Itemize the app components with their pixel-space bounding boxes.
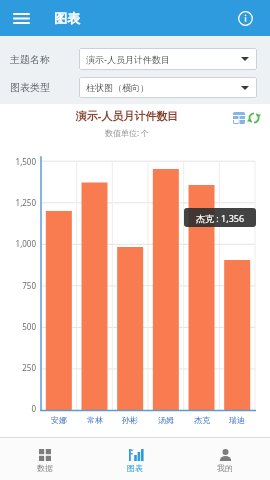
staticText: 图表 bbox=[127, 463, 143, 473]
staticText: 500 bbox=[0, 321, 36, 332]
button[interactable] bbox=[233, 112, 245, 124]
button[interactable]: 图表 bbox=[90, 438, 180, 480]
staticText: 孙彬 bbox=[112, 415, 148, 425]
button[interactable]: 数据 bbox=[0, 438, 90, 480]
staticText: 数据 bbox=[37, 463, 53, 473]
staticText: 250 bbox=[0, 362, 36, 373]
button[interactable]: 我的 bbox=[180, 438, 270, 480]
staticText: 我的 bbox=[217, 463, 233, 473]
button[interactable] bbox=[10, 7, 32, 29]
staticText: 汤姆 bbox=[148, 415, 184, 425]
staticText: 常林 bbox=[77, 415, 113, 425]
staticText: 图表类型 bbox=[10, 81, 50, 94]
staticText: 1,500 bbox=[0, 156, 36, 167]
staticText: 杰克 bbox=[184, 415, 220, 425]
staticText: 演示-人员月计件数目 bbox=[0, 108, 254, 123]
staticText: 演示-人员月计件数目 bbox=[86, 53, 170, 65]
staticText: 柱状图（横向） bbox=[86, 82, 149, 93]
staticText: 数值单位: 个 bbox=[0, 127, 254, 138]
button[interactable]: 柱状图（横向） bbox=[79, 77, 257, 98]
staticText: 安娜 bbox=[41, 415, 77, 425]
staticText: 图表 bbox=[54, 10, 80, 26]
button[interactable] bbox=[248, 112, 260, 124]
staticText: 杰克 : 1,356 bbox=[196, 212, 245, 224]
button[interactable]: 演示-人员月计件数目 bbox=[79, 48, 257, 70]
staticText: 瑞迪 bbox=[219, 415, 255, 425]
staticText: 1,000 bbox=[0, 238, 36, 249]
staticText: 主题名称 bbox=[10, 53, 50, 66]
button[interactable] bbox=[236, 9, 254, 27]
staticText: 750 bbox=[0, 280, 36, 291]
staticText: 0 bbox=[0, 403, 36, 414]
staticText: 1,250 bbox=[0, 197, 36, 208]
